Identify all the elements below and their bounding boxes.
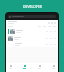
- button[interactable]: Library: [22, 65, 27, 69]
- button[interactable]: [6, 28, 58, 35]
- button[interactable]: Search: [37, 65, 42, 69]
- button[interactable]: [6, 42, 58, 47]
- staticText: DEVELOPER: [23, 4, 42, 9]
- button[interactable]: Profile: [51, 65, 56, 69]
- button[interactable]: [6, 35, 58, 42]
- button[interactable]: Home: [8, 65, 13, 69]
- button[interactable]: [8, 15, 56, 18]
